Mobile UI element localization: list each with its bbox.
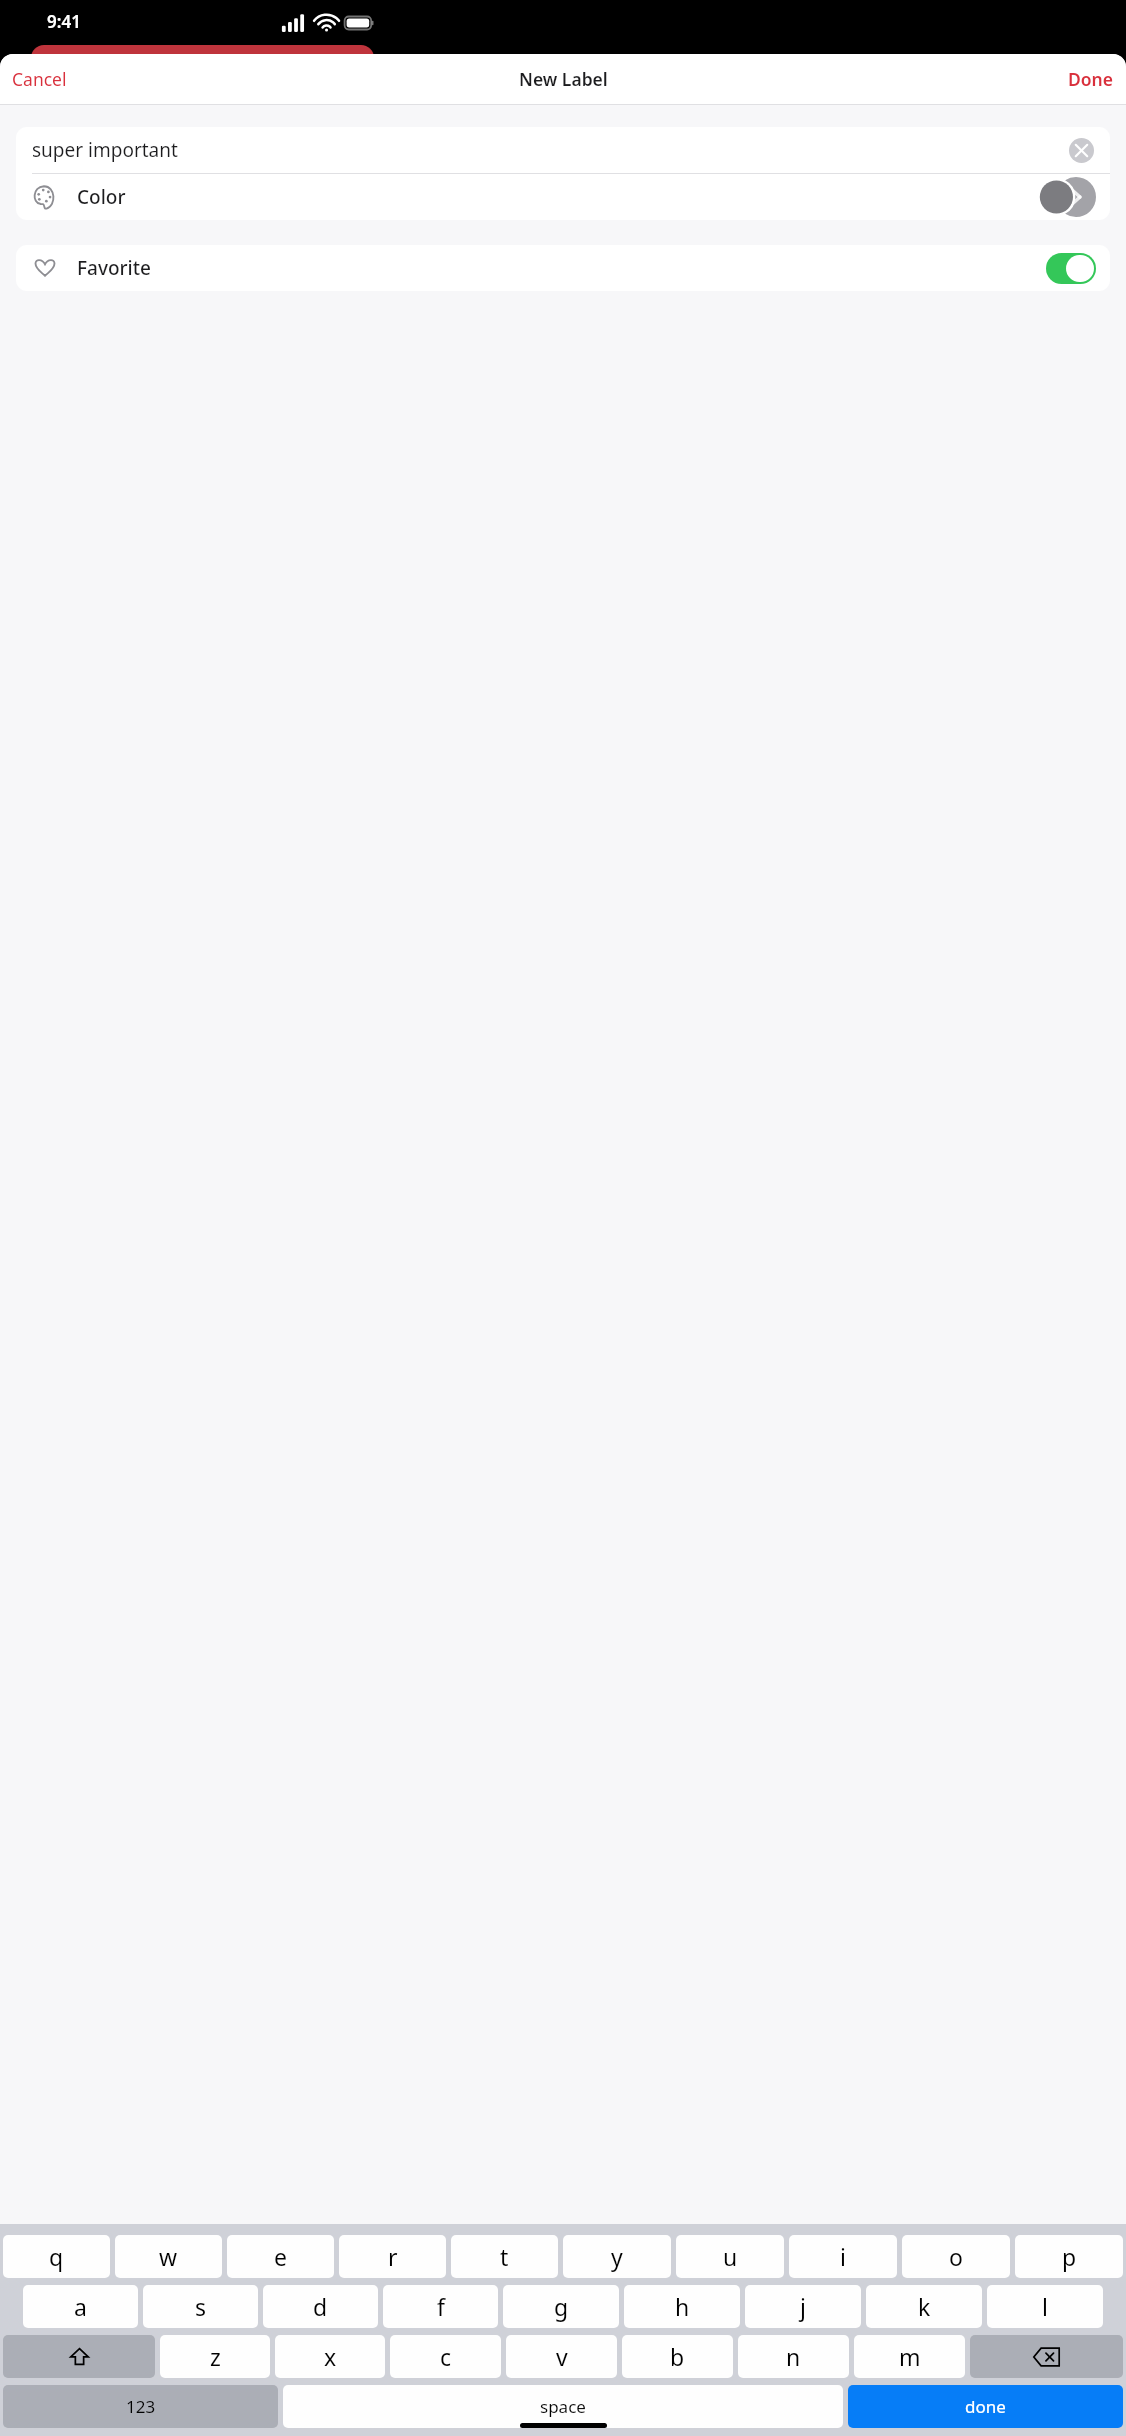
button[interactable]: q xyxy=(3,2235,110,2278)
button[interactable]: 123 xyxy=(3,2385,278,2428)
staticText: a xyxy=(74,2291,87,2322)
staticText: c xyxy=(440,2341,452,2372)
staticText: x xyxy=(324,2341,337,2372)
staticText: Done xyxy=(1068,67,1114,91)
staticText: Color xyxy=(77,184,126,210)
button[interactable]: v xyxy=(506,2335,617,2378)
button[interactable]: Favorite xyxy=(16,245,1110,291)
button[interactable]: Shift xyxy=(3,2335,155,2378)
button[interactable]: i xyxy=(789,2235,897,2278)
button[interactable]: Color xyxy=(16,174,1110,220)
staticText: u xyxy=(723,2241,738,2272)
button[interactable]: l xyxy=(987,2285,1103,2328)
button[interactable]: z xyxy=(160,2335,270,2378)
button[interactable]: u xyxy=(676,2235,784,2278)
staticText: j xyxy=(800,2291,806,2322)
staticText: s xyxy=(195,2291,207,2322)
button[interactable]: b xyxy=(622,2335,733,2378)
staticText: space xyxy=(540,2395,586,2418)
staticText: 123 xyxy=(126,2395,156,2418)
staticText: done xyxy=(965,2395,1006,2418)
button[interactable]: Done xyxy=(1056,54,1126,104)
button[interactable]: r xyxy=(339,2235,446,2278)
button[interactable]: e xyxy=(227,2235,334,2278)
button[interactable]: Favorite toggle, on xyxy=(1046,253,1096,284)
button[interactable]: o xyxy=(902,2235,1010,2278)
staticText: m xyxy=(899,2341,921,2372)
button[interactable]: a xyxy=(23,2285,138,2328)
staticText: d xyxy=(313,2291,328,2322)
staticText: r xyxy=(388,2241,398,2272)
button[interactable]: f xyxy=(383,2285,498,2328)
button[interactable]: s xyxy=(143,2285,258,2328)
staticText: Cancel xyxy=(12,67,67,91)
staticText: g xyxy=(554,2291,569,2322)
staticText: i xyxy=(840,2241,846,2272)
button[interactable]: j xyxy=(745,2285,861,2328)
staticText: y xyxy=(611,2241,623,2272)
button[interactable]: k xyxy=(866,2285,982,2328)
button[interactable]: Backspace xyxy=(970,2335,1123,2378)
staticText: v xyxy=(556,2341,568,2372)
button[interactable]: g xyxy=(503,2285,619,2328)
staticText: New Label xyxy=(519,67,608,91)
button[interactable]: t xyxy=(451,2235,558,2278)
staticText: f xyxy=(437,2291,445,2322)
staticText: Favorite xyxy=(77,255,151,281)
button[interactable]: y xyxy=(563,2235,671,2278)
button[interactable]: w xyxy=(115,2235,222,2278)
button[interactable]: d xyxy=(263,2285,378,2328)
staticText: e xyxy=(274,2241,287,2272)
staticText: t xyxy=(500,2241,509,2272)
button[interactable]: Cancel xyxy=(0,54,79,104)
staticText: o xyxy=(949,2241,963,2272)
button[interactable]: x xyxy=(275,2335,385,2378)
button[interactable]: Clear text xyxy=(1066,135,1096,165)
button[interactable]: space xyxy=(283,2385,843,2428)
staticText: z xyxy=(210,2341,221,2372)
button[interactable]: done xyxy=(848,2385,1123,2428)
staticText: super important xyxy=(32,137,1066,163)
staticText: p xyxy=(1062,2241,1077,2272)
staticText: 9:41 xyxy=(47,10,81,33)
button[interactable]: h xyxy=(624,2285,740,2328)
button[interactable]: p xyxy=(1015,2235,1123,2278)
staticText: q xyxy=(49,2241,64,2272)
staticText: w xyxy=(159,2241,178,2272)
button[interactable]: c xyxy=(390,2335,501,2378)
staticText: l xyxy=(1042,2291,1048,2322)
staticText: h xyxy=(675,2291,690,2322)
button[interactable]: m xyxy=(854,2335,965,2378)
staticText: b xyxy=(670,2341,685,2372)
button[interactable]: n xyxy=(738,2335,849,2378)
staticText: k xyxy=(918,2291,931,2322)
staticText: n xyxy=(786,2341,801,2372)
